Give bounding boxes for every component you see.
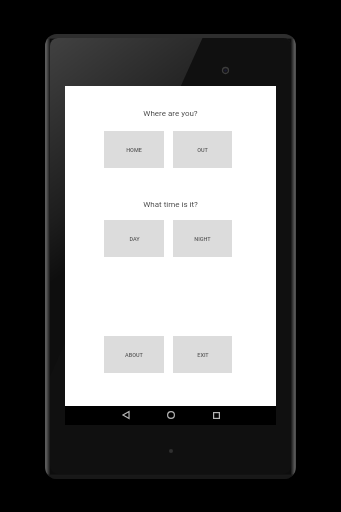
button[interactable]: EXIT [173, 336, 232, 373]
staticText: EXIT [197, 352, 209, 358]
staticText: HOME [126, 147, 142, 153]
button[interactable]: HOME [104, 131, 164, 168]
staticText: Where are you? [143, 109, 198, 118]
staticText: ABOUT [125, 352, 143, 358]
button[interactable]: Home [163, 407, 179, 423]
staticText: NIGHT [194, 236, 211, 242]
staticText: What time is it? [143, 200, 198, 209]
button[interactable]: DAY [104, 220, 164, 257]
staticText: DAY [129, 236, 140, 242]
button[interactable]: OUT [173, 131, 232, 168]
staticText: OUT [197, 147, 208, 153]
button[interactable]: ABOUT [104, 336, 164, 373]
button[interactable]: Recent apps [208, 407, 224, 423]
button[interactable]: Back [118, 407, 134, 423]
button[interactable]: NIGHT [173, 220, 232, 257]
